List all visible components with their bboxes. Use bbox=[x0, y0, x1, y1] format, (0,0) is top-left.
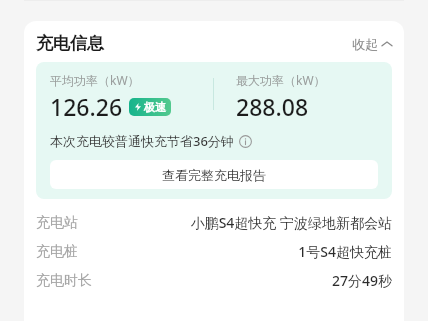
button[interactable]: 充电桩 bbox=[24, 237, 404, 266]
staticText: 27分49秒 bbox=[331, 271, 392, 290]
staticText: 最大功率（kW） bbox=[236, 72, 326, 88]
button[interactable]: 本次充电较普通快充节省36分钟 bbox=[50, 132, 252, 150]
button[interactable]: 查看完整充电报告 bbox=[50, 160, 378, 189]
staticText: 小鹏S4超快充 宁波绿地新都会站 bbox=[190, 213, 392, 232]
staticText: 充电时长 bbox=[36, 272, 92, 290]
staticText: 288.08 bbox=[236, 91, 309, 122]
button[interactable]: 充电信息 bbox=[24, 21, 404, 62]
staticText: 126.26 bbox=[50, 91, 123, 122]
staticText: 充电站 bbox=[36, 214, 78, 232]
staticText: 充电桩 bbox=[36, 243, 78, 261]
staticText: 1号S4超快充桩 bbox=[298, 242, 392, 261]
staticText: 极速 bbox=[144, 100, 166, 114]
staticText: 平均功率（kW） bbox=[50, 72, 140, 88]
other: 详情说明 bbox=[239, 135, 252, 148]
staticText: 收起 bbox=[352, 36, 378, 52]
staticText: 查看完整充电报告 bbox=[162, 167, 266, 183]
button[interactable]: 充电时长 bbox=[24, 266, 404, 295]
staticText: 本次充电较普通快充节省36分钟 bbox=[50, 132, 234, 150]
button[interactable]: 充电站 bbox=[24, 208, 404, 237]
staticText: 充电信息 bbox=[36, 33, 104, 54]
